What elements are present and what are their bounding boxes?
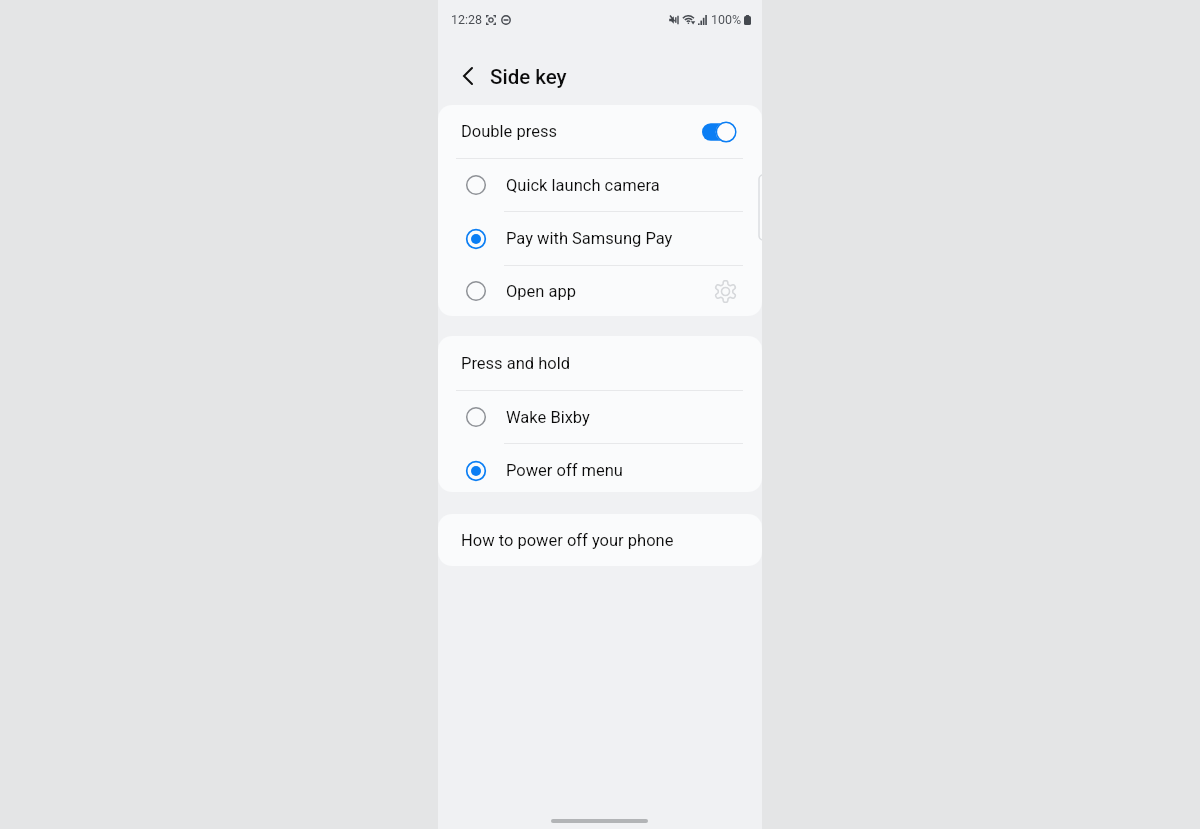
button[interactable]: Power off menu	[438, 444, 762, 492]
staticText: 12:28	[451, 12, 483, 27]
button[interactable]: Wake Bixby	[438, 391, 762, 443]
button[interactable]: How to power off your phone	[438, 514, 762, 566]
staticText: Side key	[490, 65, 567, 89]
staticText: How to power off your phone	[461, 531, 674, 550]
button[interactable]: Open app	[438, 266, 762, 316]
button[interactable]: Back	[450, 58, 486, 94]
staticText: Pay with Samsung Pay	[506, 229, 673, 248]
staticText: Press and hold	[461, 354, 571, 373]
button[interactable]: Double press	[438, 105, 762, 158]
staticText: Quick launch camera	[506, 176, 660, 195]
staticText: Double press	[461, 122, 557, 141]
button[interactable]: Pay with Samsung Pay	[438, 212, 762, 265]
button[interactable]: Double press toggle	[702, 120, 736, 144]
staticText: Wake Bixby	[506, 408, 590, 427]
button[interactable]: Quick launch camera	[438, 159, 762, 211]
staticText: Open app	[506, 282, 577, 301]
staticText: Power off menu	[506, 461, 623, 480]
staticText: 100%	[711, 12, 742, 27]
button[interactable]: App settings	[708, 274, 742, 308]
